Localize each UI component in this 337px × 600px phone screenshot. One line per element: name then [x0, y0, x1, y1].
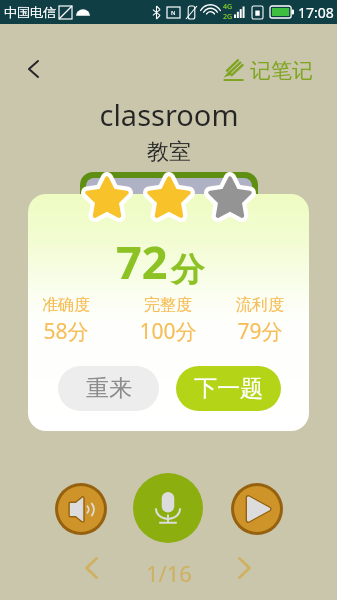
staticText: 4G: [223, 2, 233, 12]
button[interactable]: Play recording: [234, 486, 280, 532]
staticText: 中国电信: [4, 4, 56, 20]
button[interactable]: Previous: [75, 552, 107, 584]
staticText: 79分: [237, 317, 283, 346]
staticText: 2G: [223, 12, 233, 22]
button[interactable]: 记笔记: [222, 58, 313, 84]
staticText: 重来: [86, 374, 132, 403]
staticText: 记笔记: [250, 58, 313, 84]
staticText: N: [171, 9, 176, 17]
staticText: 17:08: [298, 3, 334, 22]
staticText: 72: [116, 231, 168, 292]
button[interactable]: Back: [18, 54, 48, 84]
staticText: 分: [171, 249, 204, 291]
staticText: 1/16: [146, 558, 192, 588]
button[interactable]: Record: [133, 473, 203, 543]
staticText: 流利度: [236, 295, 284, 315]
button[interactable]: Play audio: [58, 486, 104, 532]
staticText: 完整度: [144, 295, 192, 315]
staticText: 准确度: [42, 295, 90, 315]
button[interactable]: Next: [228, 552, 260, 584]
staticText: 100分: [139, 317, 197, 346]
staticText: 教室: [147, 138, 191, 166]
staticText: 58分: [43, 317, 89, 346]
staticText: 下一题: [194, 374, 263, 403]
staticText: classroom: [99, 95, 239, 134]
button[interactable]: 重来: [58, 366, 159, 411]
button[interactable]: 下一题: [176, 366, 281, 411]
